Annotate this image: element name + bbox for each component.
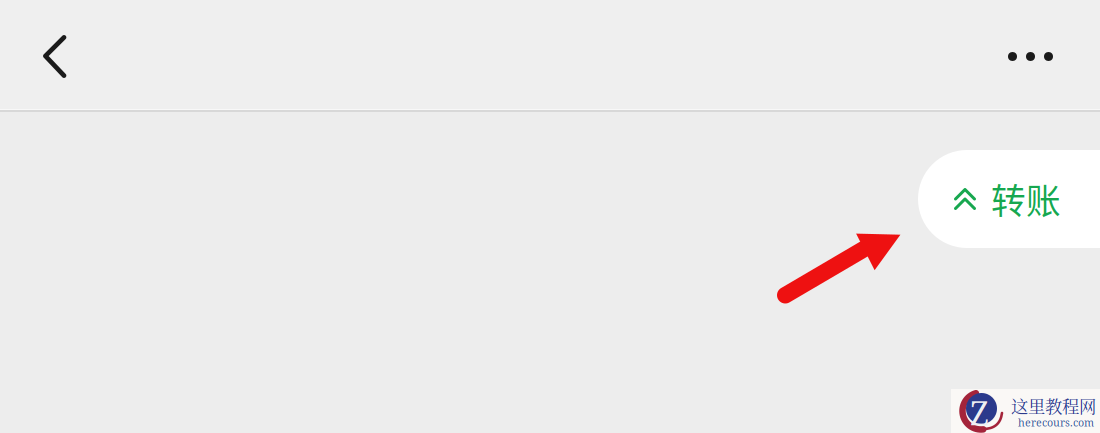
button[interactable]: 转账 bbox=[918, 150, 1100, 248]
staticText: 转账 bbox=[991, 174, 1061, 224]
button[interactable]: More bbox=[950, 0, 1100, 109]
staticText: 这里教程网 bbox=[1011, 393, 1096, 418]
staticText: herecours.com bbox=[1018, 415, 1094, 429]
button[interactable]: Back bbox=[0, 0, 110, 108]
staticText: Z bbox=[970, 391, 989, 433]
